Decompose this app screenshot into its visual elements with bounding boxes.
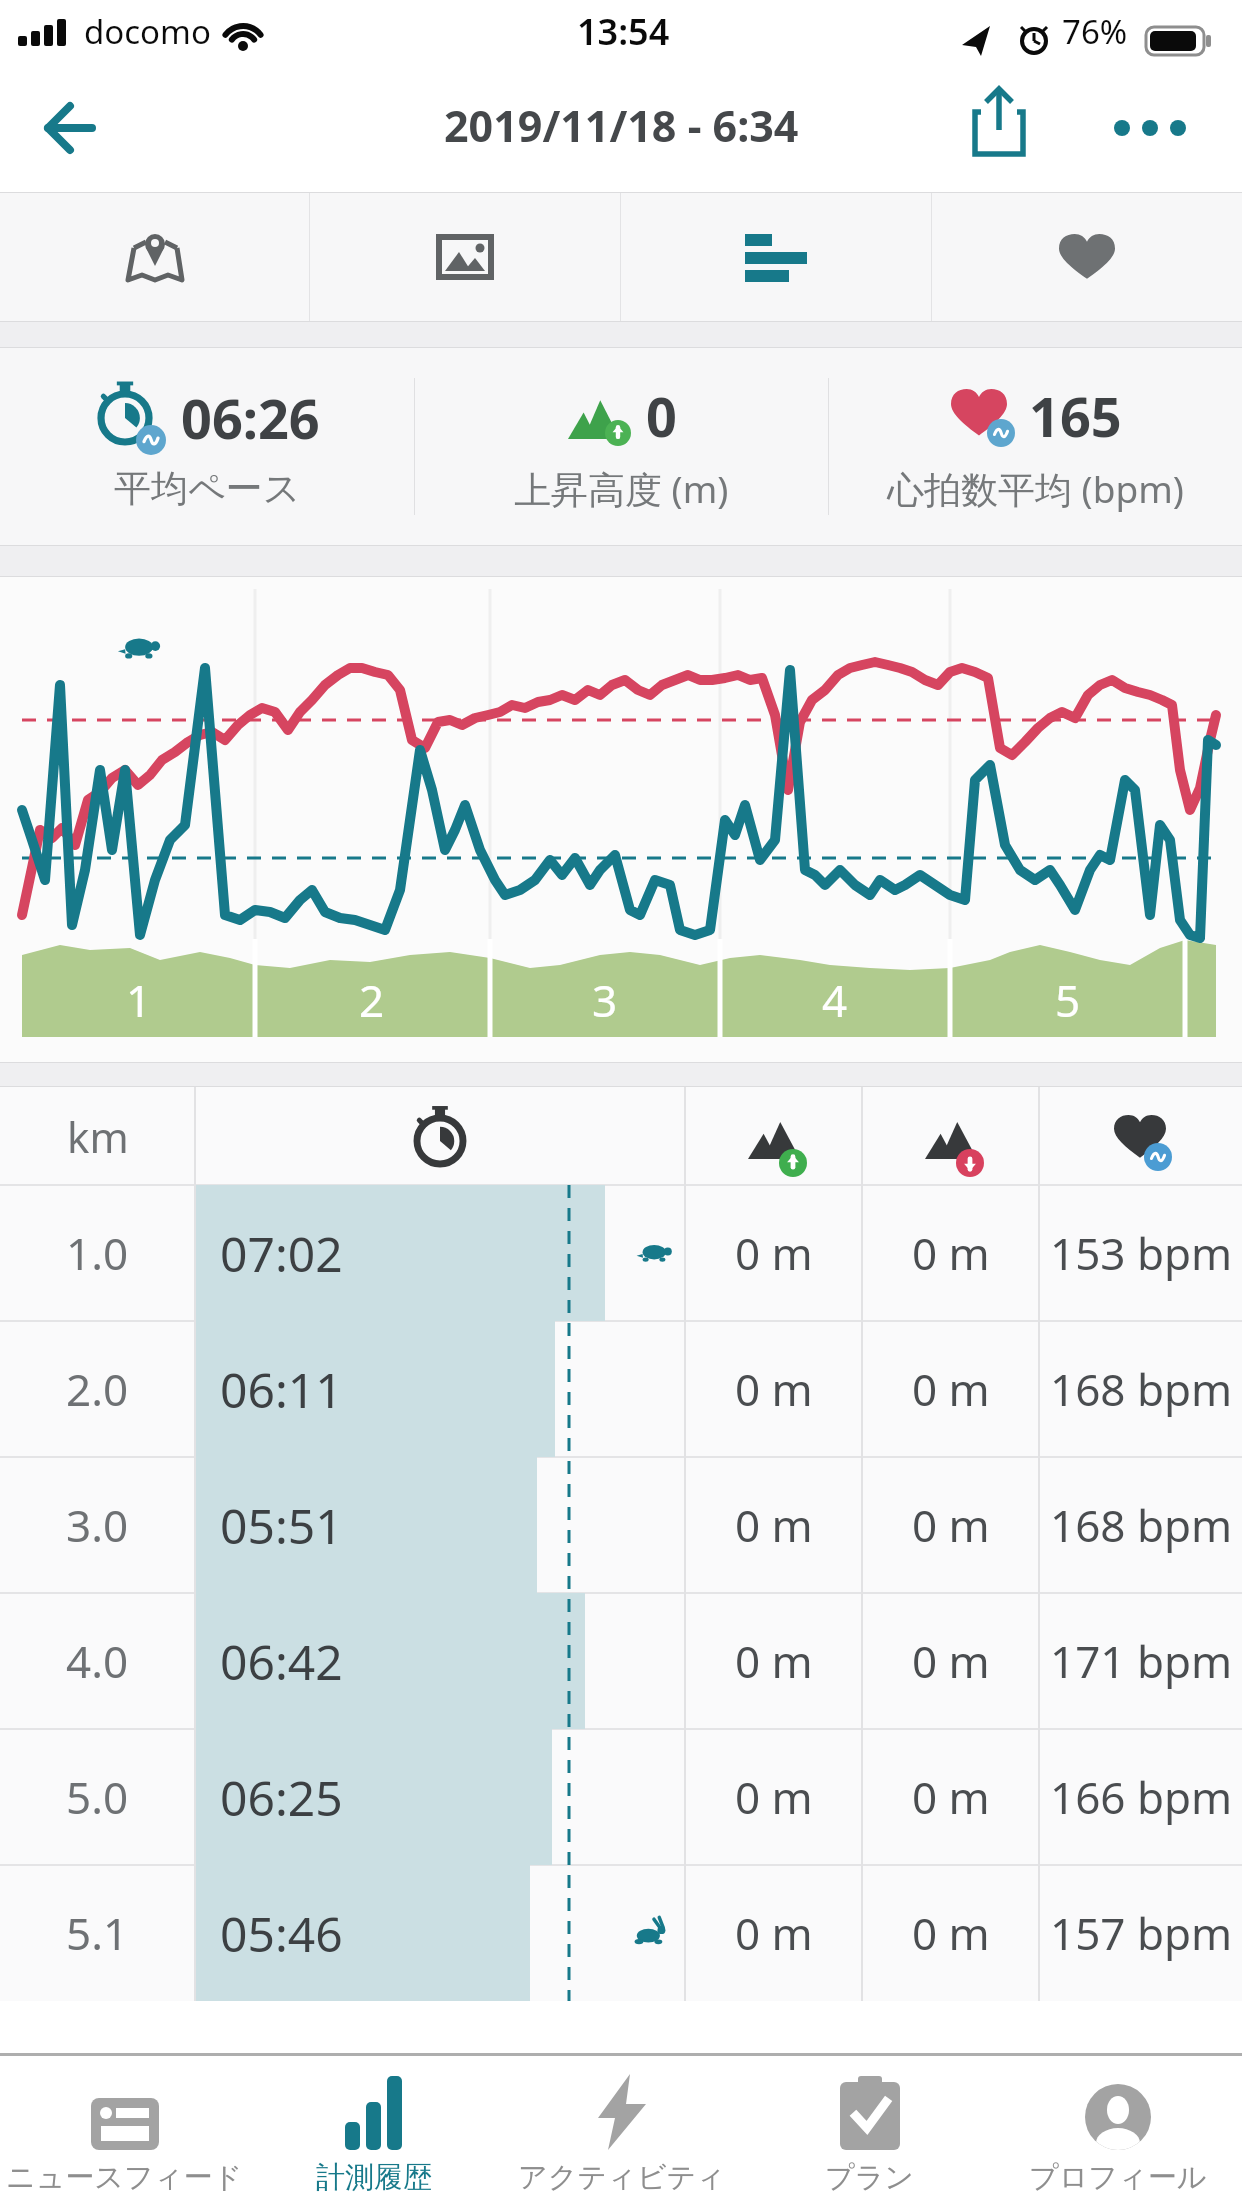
staticText: 0 m xyxy=(735,1223,813,1283)
button[interactable]: プロフィール xyxy=(994,2056,1242,2208)
staticText: 4 xyxy=(822,970,848,1026)
staticText: 168 bpm xyxy=(1050,1359,1233,1419)
staticText: 06:11 xyxy=(220,1357,343,1422)
staticText: 153 bpm xyxy=(1050,1223,1233,1283)
staticText: 157 bpm xyxy=(1050,1903,1233,1963)
staticText: 06:42 xyxy=(220,1629,343,1694)
staticText: 1.0 xyxy=(66,1223,129,1283)
staticText: プラン xyxy=(825,2159,915,2196)
staticText: 3 xyxy=(592,970,618,1026)
staticText: 2019/11/18 - 6:34 xyxy=(444,96,799,155)
button[interactable]: 5.1 xyxy=(0,1865,1242,2001)
staticText: プロフィール xyxy=(1029,2159,1207,2196)
staticText: 171 bpm xyxy=(1050,1631,1233,1691)
staticText: 0 m xyxy=(912,1359,990,1419)
button[interactable] xyxy=(621,193,931,321)
staticText: 5 xyxy=(1055,970,1081,1026)
staticText: 0 m xyxy=(735,1495,813,1555)
staticText: アクティビティ xyxy=(518,2159,726,2196)
button[interactable]: アクティビティ xyxy=(498,2056,746,2208)
button[interactable]: 4.0 xyxy=(0,1593,1242,1729)
staticText: km xyxy=(67,1108,129,1165)
staticText: 2 xyxy=(359,970,385,1026)
staticText: 0 xyxy=(646,379,677,453)
button[interactable]: プラン xyxy=(746,2056,994,2208)
button[interactable]: 5.0 xyxy=(0,1729,1242,1865)
staticText: 5.0 xyxy=(66,1767,129,1827)
staticText: ニュースフィード xyxy=(6,2159,243,2196)
staticText: 76% xyxy=(1062,9,1128,54)
staticText: 0 m xyxy=(912,1767,990,1827)
staticText: 05:46 xyxy=(220,1901,343,1966)
button[interactable] xyxy=(952,62,1052,192)
button[interactable]: 1.0 xyxy=(0,1185,1242,1321)
staticText: 3.0 xyxy=(66,1495,129,1555)
staticText: 06:25 xyxy=(220,1765,343,1830)
staticText: 上昇高度 (m) xyxy=(514,463,729,514)
button[interactable]: 計測履歴 xyxy=(249,2056,498,2208)
button[interactable] xyxy=(0,193,309,321)
staticText: 13:54 xyxy=(577,7,670,56)
staticText: 07:02 xyxy=(220,1221,343,1286)
staticText: 0 m xyxy=(735,1631,813,1691)
button[interactable]: 2.0 xyxy=(0,1321,1242,1457)
staticText: 0 m xyxy=(735,1359,813,1419)
staticText: 心拍数平均 (bpm) xyxy=(887,463,1184,514)
staticText: 2.0 xyxy=(66,1359,129,1419)
staticText: 0 m xyxy=(912,1903,990,1963)
button[interactable] xyxy=(932,193,1242,321)
staticText: 0 m xyxy=(912,1631,990,1691)
staticText: 0 m xyxy=(735,1903,813,1963)
staticText: 166 bpm xyxy=(1050,1767,1233,1827)
staticText: 計測履歴 xyxy=(316,2159,432,2196)
staticText: 06:26 xyxy=(181,381,320,455)
staticText: 165 xyxy=(1029,379,1122,453)
staticText: 平均ペース xyxy=(114,465,301,512)
button[interactable]: ニュースフィード xyxy=(0,2056,249,2208)
staticText: 168 bpm xyxy=(1050,1495,1233,1555)
button[interactable] xyxy=(1112,62,1242,192)
staticText: 0 m xyxy=(735,1767,813,1827)
button[interactable] xyxy=(310,193,620,321)
staticText: 0 m xyxy=(912,1495,990,1555)
staticText: 1 xyxy=(126,970,152,1026)
staticText: 5.1 xyxy=(66,1903,129,1963)
button[interactable]: 3.0 xyxy=(0,1457,1242,1593)
staticText: 0 m xyxy=(912,1223,990,1283)
button[interactable] xyxy=(0,62,110,192)
staticText: docomo xyxy=(84,9,211,54)
staticText: 4.0 xyxy=(66,1631,129,1691)
staticText: 05:51 xyxy=(220,1493,343,1558)
